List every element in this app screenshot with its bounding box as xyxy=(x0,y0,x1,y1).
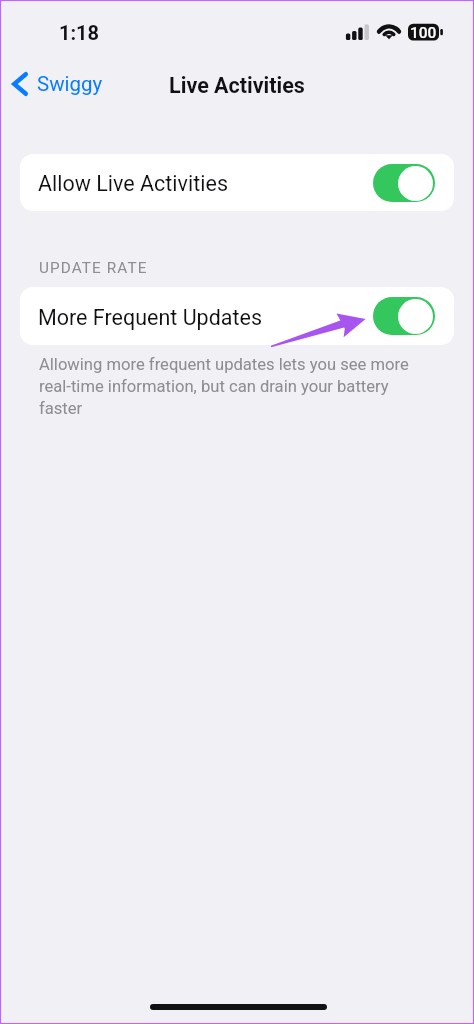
staticText: Live Activities xyxy=(0,73,474,98)
staticText: Allow Live Activities xyxy=(38,171,228,196)
staticText: Swiggy xyxy=(37,72,103,96)
staticText: Allowing more frequent updates lets you … xyxy=(39,355,411,418)
staticText: UPDATE RATE xyxy=(39,259,148,277)
button[interactable]: Allow Live Activities xyxy=(20,154,454,211)
other: Back xyxy=(12,72,28,96)
staticText: 100 xyxy=(410,24,437,42)
button[interactable]: Toggle xyxy=(373,164,435,202)
button[interactable]: Back xyxy=(8,68,107,100)
button[interactable]: Toggle xyxy=(373,297,435,335)
staticText: More Frequent Updates xyxy=(38,305,263,330)
staticText: 1:18 xyxy=(59,21,100,44)
button[interactable]: More Frequent Updates xyxy=(20,287,454,345)
